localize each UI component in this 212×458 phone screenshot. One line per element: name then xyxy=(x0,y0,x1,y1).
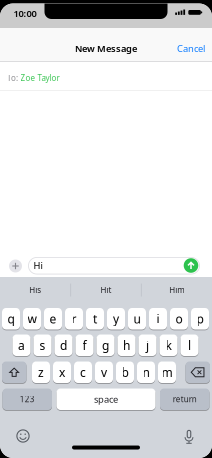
staticText: a xyxy=(18,337,25,353)
button[interactable]: o xyxy=(170,307,188,330)
button[interactable]: g xyxy=(96,334,114,356)
button[interactable]: i xyxy=(149,307,167,330)
button[interactable]: Hit xyxy=(71,277,141,302)
button[interactable]: e xyxy=(44,307,62,330)
staticText: o xyxy=(175,311,182,327)
staticText: His xyxy=(29,285,41,295)
button[interactable]: Dictation xyxy=(183,429,194,444)
button[interactable]: x xyxy=(53,361,71,383)
button[interactable]: v xyxy=(95,361,113,383)
button[interactable]: p xyxy=(191,307,209,330)
button[interactable]: Him xyxy=(142,277,212,302)
staticText: New Message xyxy=(75,42,137,55)
staticText: f xyxy=(82,337,86,353)
button[interactable]: u xyxy=(128,307,146,330)
button[interactable]: return xyxy=(160,388,209,410)
staticText: Hit xyxy=(100,285,111,295)
button[interactable]: d xyxy=(54,334,72,356)
staticText: space xyxy=(94,393,118,405)
button[interactable]: Cancel xyxy=(177,42,205,55)
button[interactable]: space xyxy=(56,388,155,410)
button[interactable]: q xyxy=(2,307,20,330)
button[interactable]: To: xyxy=(7,73,59,83)
staticText: s xyxy=(39,337,45,353)
button[interactable]: a xyxy=(12,334,30,356)
button[interactable]: His xyxy=(0,277,70,302)
button[interactable]: h xyxy=(117,334,135,356)
staticText: x xyxy=(59,364,65,380)
staticText: r xyxy=(71,311,76,327)
staticText: z xyxy=(38,364,44,380)
staticText: v xyxy=(101,364,107,380)
button[interactable]: b xyxy=(116,361,134,383)
button[interactable]: z xyxy=(32,361,50,383)
staticText: u xyxy=(133,311,140,327)
button[interactable]: 123 xyxy=(2,388,52,410)
staticText: i xyxy=(156,311,159,327)
staticText: w xyxy=(27,311,36,327)
staticText: q xyxy=(7,311,14,327)
staticText: l xyxy=(188,337,191,353)
button[interactable]: r xyxy=(65,307,83,330)
staticText: return xyxy=(173,394,197,404)
button[interactable]: f xyxy=(75,334,93,356)
staticText: 10:00 xyxy=(13,7,36,20)
staticText: Cancel xyxy=(177,42,205,55)
staticText: t xyxy=(93,311,97,327)
button[interactable]: m xyxy=(158,361,176,383)
staticText: Him xyxy=(169,285,184,295)
button[interactable]: Emoji xyxy=(16,429,30,443)
staticText: 123 xyxy=(20,394,35,404)
staticText: b xyxy=(121,364,128,380)
staticText: Zoe Taylor xyxy=(20,73,59,83)
staticText: e xyxy=(49,311,56,327)
button[interactable]: n xyxy=(137,361,155,383)
staticText: n xyxy=(142,364,149,380)
staticText: Hi xyxy=(33,259,42,272)
staticText: p xyxy=(196,311,203,327)
staticText: c xyxy=(80,364,86,380)
button[interactable]: Send xyxy=(184,258,198,273)
staticText: g xyxy=(102,337,109,353)
button[interactable]: y xyxy=(107,307,125,330)
staticText: m xyxy=(161,364,172,380)
staticText: k xyxy=(165,337,171,353)
button[interactable]: Shift xyxy=(2,361,26,383)
staticText: y xyxy=(113,311,119,327)
staticText: d xyxy=(60,337,67,353)
button[interactable]: k xyxy=(159,334,177,356)
button[interactable]: c xyxy=(74,361,92,383)
staticText: j xyxy=(146,337,149,353)
button[interactable]: s xyxy=(33,334,51,356)
button[interactable]: l xyxy=(180,334,198,356)
staticText: h xyxy=(123,337,130,353)
button[interactable]: w xyxy=(23,307,41,330)
button[interactable]: Delete xyxy=(185,361,210,383)
button[interactable]: t xyxy=(86,307,104,330)
button[interactable]: Add attachment xyxy=(9,259,22,272)
staticText: To: xyxy=(7,73,18,83)
button[interactable]: j xyxy=(138,334,156,356)
